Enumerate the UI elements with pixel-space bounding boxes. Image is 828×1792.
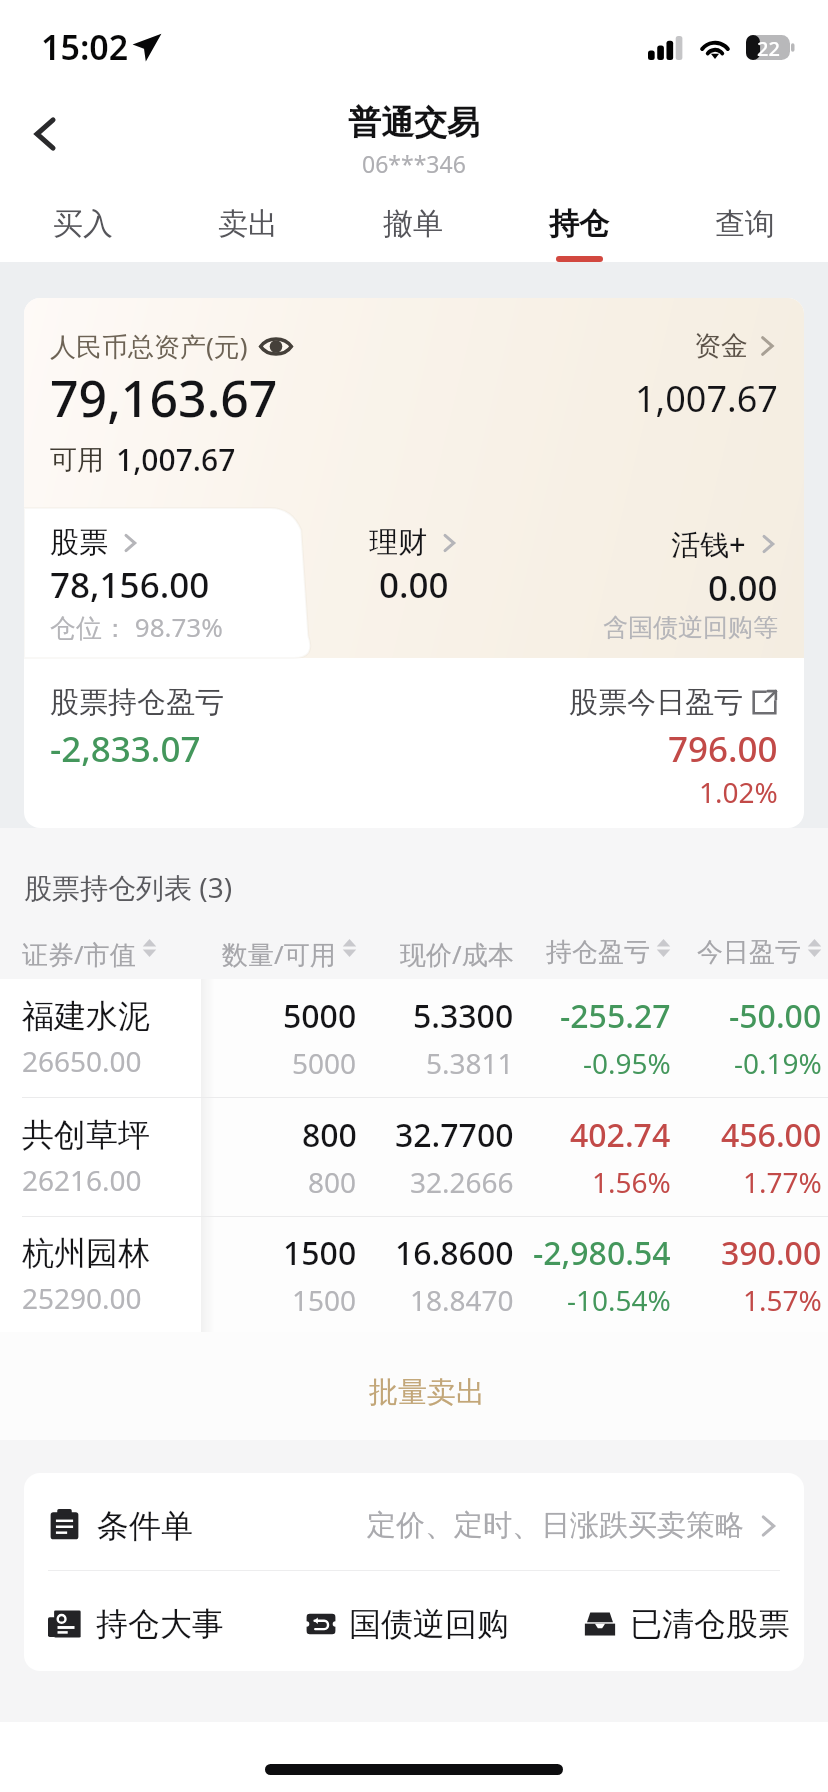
button[interactable]: 杭州园林 bbox=[0, 1217, 828, 1332]
staticText: -255.27 bbox=[560, 994, 671, 1038]
staticText: -2,833.07 bbox=[50, 725, 201, 773]
staticText: 资金 bbox=[694, 329, 748, 363]
staticText: 1.56% bbox=[592, 1163, 671, 1201]
staticText: 股票持仓列表 (3) bbox=[24, 868, 233, 906]
button[interactable]: 股票 bbox=[50, 524, 300, 645]
staticText: 国债逆回购 bbox=[349, 1604, 509, 1644]
button[interactable]: 理财 bbox=[369, 524, 459, 609]
staticText: 今日盈亏 bbox=[697, 936, 801, 969]
staticText: 1500 bbox=[283, 1231, 357, 1275]
button[interactable]: 撤单 bbox=[330, 180, 496, 262]
staticText: 32.7700 bbox=[395, 1113, 514, 1157]
staticText: 1.02% bbox=[699, 773, 778, 811]
staticText: 可用 bbox=[50, 443, 104, 477]
staticText: 仓位： 98.73% bbox=[50, 609, 223, 645]
staticText: 撤单 bbox=[383, 205, 443, 243]
staticText: 06***346 bbox=[362, 148, 466, 179]
staticText: 股票今日盈亏 bbox=[569, 684, 743, 721]
staticText: 0.00 bbox=[708, 564, 778, 612]
button[interactable]: 现价/成本 bbox=[357, 936, 514, 972]
button[interactable]: 持仓盈亏 bbox=[514, 936, 671, 969]
button[interactable]: 批量卖出 bbox=[0, 1332, 828, 1440]
button[interactable]: Toggle balance visibility bbox=[50, 328, 292, 364]
staticText: 股票持仓盈亏 bbox=[50, 684, 224, 721]
staticText: 390.00 bbox=[721, 1231, 822, 1275]
staticText: 456.00 bbox=[721, 1113, 822, 1157]
staticText: -0.95% bbox=[583, 1044, 671, 1082]
button[interactable]: 股票今日盈亏 bbox=[569, 684, 778, 721]
staticText: 条件单 bbox=[97, 1506, 193, 1546]
staticText: 股票 bbox=[50, 524, 108, 561]
staticText: 1500 bbox=[292, 1281, 357, 1319]
button[interactable]: 资金 bbox=[694, 329, 778, 363]
staticText: 共创草坪 bbox=[22, 1115, 150, 1155]
staticText: 普通交易 bbox=[348, 102, 480, 144]
staticText: 18.8470 bbox=[410, 1281, 514, 1319]
staticText: 1.57% bbox=[743, 1281, 822, 1319]
staticText: 79,163.67 bbox=[50, 364, 278, 432]
staticText: 查询 bbox=[715, 205, 775, 243]
staticText: 持仓大事 bbox=[96, 1604, 224, 1644]
staticText: 卖出 bbox=[218, 205, 278, 243]
staticText: 402.74 bbox=[570, 1113, 671, 1157]
staticText: 持仓盈亏 bbox=[546, 936, 650, 969]
staticText: 批量卖出 bbox=[369, 1374, 485, 1411]
staticText: -0.19% bbox=[734, 1044, 822, 1082]
button[interactable]: 查询 bbox=[662, 180, 828, 262]
button[interactable]: 共创草坪 bbox=[0, 1098, 828, 1216]
staticText: 证券/市值 bbox=[22, 936, 136, 972]
button[interactable]: 今日盈亏 bbox=[671, 936, 822, 969]
staticText: 796.00 bbox=[668, 725, 778, 773]
staticText: 5000 bbox=[292, 1044, 357, 1082]
staticText: 800 bbox=[302, 1113, 357, 1157]
staticText: 1.77% bbox=[743, 1163, 822, 1201]
button[interactable]: 持仓 bbox=[496, 180, 662, 262]
staticText: 15:02 bbox=[41, 24, 129, 70]
staticText: 0.00 bbox=[379, 561, 449, 609]
button[interactable]: 数量/可用 bbox=[201, 936, 357, 972]
staticText: 5.3300 bbox=[413, 994, 514, 1038]
staticText: 杭州园林 bbox=[22, 1233, 150, 1273]
staticText: 活钱+ bbox=[671, 524, 746, 564]
staticText: 买入 bbox=[53, 205, 113, 243]
staticText: 78,156.00 bbox=[50, 561, 210, 609]
staticText: 数量/可用 bbox=[222, 936, 336, 972]
button[interactable]: 国债逆回购 bbox=[305, 1604, 547, 1644]
staticText: 25290.00 bbox=[22, 1279, 142, 1317]
button[interactable]: 条件单 bbox=[24, 1473, 804, 1570]
staticText: -50.00 bbox=[729, 994, 822, 1038]
staticText: 理财 bbox=[369, 524, 427, 561]
staticText: 26216.00 bbox=[22, 1161, 142, 1199]
staticText: 含国债逆回购等 bbox=[603, 612, 778, 643]
button[interactable]: 福建水泥 bbox=[0, 979, 828, 1097]
staticText: 800 bbox=[308, 1163, 357, 1201]
staticText: 22 bbox=[757, 35, 780, 60]
staticText: -10.54% bbox=[567, 1281, 671, 1319]
staticText: 福建水泥 bbox=[22, 996, 150, 1036]
button[interactable]: 活钱+ bbox=[603, 524, 778, 643]
staticText: 1,007.67 bbox=[116, 439, 236, 480]
button[interactable]: Back bbox=[16, 104, 76, 164]
button[interactable]: 卖出 bbox=[165, 180, 330, 262]
button[interactable]: 已清仓股票 bbox=[547, 1604, 790, 1644]
staticText: 已清仓股票 bbox=[630, 1604, 790, 1644]
staticText: 26650.00 bbox=[22, 1042, 142, 1080]
staticText: 现价/成本 bbox=[400, 936, 514, 972]
staticText: 1,007.67 bbox=[635, 374, 778, 423]
staticText: 32.2666 bbox=[410, 1163, 514, 1201]
staticText: 5000 bbox=[283, 994, 357, 1038]
staticText: 人民币总资产(元) bbox=[50, 328, 248, 364]
staticText: 持仓 bbox=[549, 205, 609, 243]
button[interactable]: 买入 bbox=[0, 180, 165, 262]
staticText: 定价、定时、日涨跌买卖策略 bbox=[367, 1507, 744, 1544]
staticText: -2,980.54 bbox=[533, 1231, 671, 1275]
button[interactable]: 持仓大事 bbox=[48, 1604, 305, 1644]
staticText: 16.8600 bbox=[395, 1231, 514, 1275]
button[interactable]: 证券/市值 bbox=[22, 936, 201, 972]
staticText: 5.3811 bbox=[426, 1044, 514, 1082]
